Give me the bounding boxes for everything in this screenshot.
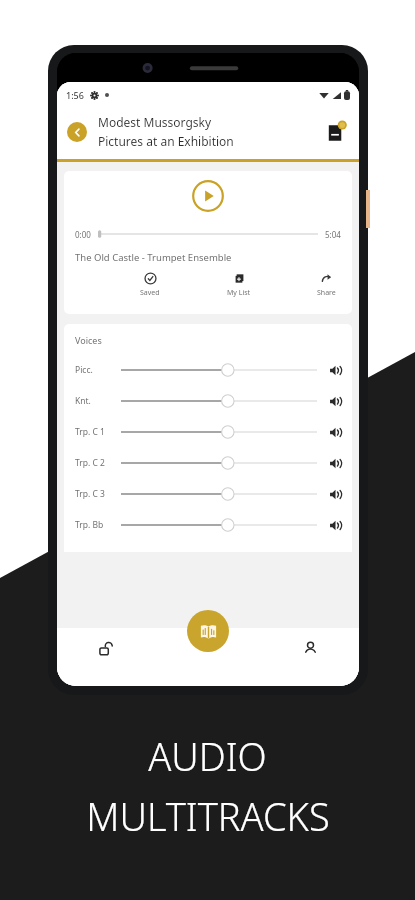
button[interactable]: Score bbox=[323, 119, 349, 145]
staticText: 0:00 bbox=[75, 229, 91, 240]
staticText: MULTITRACKS bbox=[86, 790, 330, 842]
button[interactable]: Back bbox=[67, 122, 87, 142]
button[interactable]: Mute Trp. Bb bbox=[327, 517, 343, 533]
staticText: Trp. C 3 bbox=[75, 488, 121, 500]
button[interactable]: Mute Trp. C 1 bbox=[327, 424, 343, 440]
staticText: 5:04 bbox=[325, 229, 341, 240]
staticText: AUDIO bbox=[148, 730, 267, 782]
staticText: Share bbox=[317, 288, 336, 298]
staticText: Trp. C 2 bbox=[75, 457, 121, 469]
button[interactable]: Picc. bbox=[75, 354, 343, 385]
button[interactable]: Profile bbox=[297, 635, 323, 661]
staticText: Saved bbox=[140, 288, 160, 298]
staticText: Picc. bbox=[75, 364, 121, 376]
button[interactable]: My List bbox=[222, 271, 256, 299]
staticText: 1:56 bbox=[66, 89, 84, 101]
staticText: The Old Castle - Trumpet Ensemble bbox=[75, 251, 232, 264]
staticText: Trp. Bb bbox=[75, 519, 121, 531]
staticText: Voices bbox=[75, 334, 102, 346]
button[interactable]: Saved bbox=[135, 271, 165, 299]
staticText: Knt. bbox=[75, 395, 121, 407]
button[interactable] bbox=[98, 228, 318, 240]
button[interactable]: Trp. C 3 bbox=[75, 478, 343, 509]
button[interactable]: Mute Trp. C 2 bbox=[327, 455, 343, 471]
button[interactable]: Trp. Bb bbox=[75, 509, 343, 540]
staticText: Trp. C 1 bbox=[75, 426, 121, 438]
button[interactable]: Mute Trp. C 3 bbox=[327, 486, 343, 502]
staticText: Pictures at an Exhibition bbox=[98, 133, 234, 149]
staticText: Modest Mussorgsky bbox=[98, 114, 212, 130]
staticText: My List bbox=[227, 288, 251, 298]
button[interactable]: Share bbox=[312, 271, 341, 299]
button[interactable]: Mute Knt. bbox=[327, 393, 343, 409]
button[interactable]: Unlock bbox=[93, 635, 119, 661]
button[interactable]: Sheet music bbox=[187, 610, 229, 652]
button[interactable]: Mute Picc. bbox=[327, 362, 343, 378]
button[interactable]: Trp. C 1 bbox=[75, 416, 343, 447]
button[interactable]: Play bbox=[192, 180, 224, 212]
button[interactable]: Knt. bbox=[75, 385, 343, 416]
button[interactable]: Trp. C 2 bbox=[75, 447, 343, 478]
